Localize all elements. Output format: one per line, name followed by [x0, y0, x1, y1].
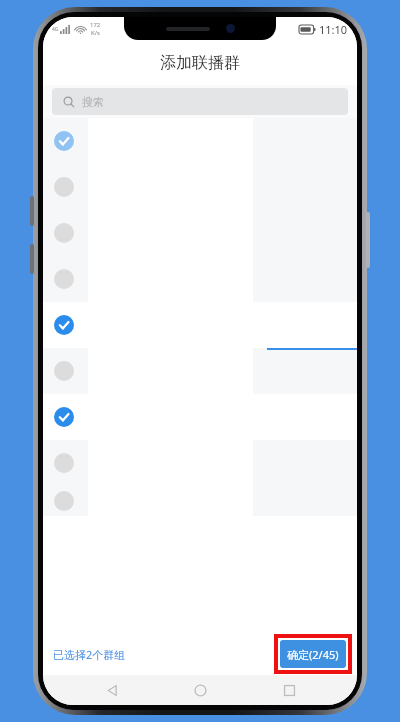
button[interactable]: Home	[180, 675, 220, 705]
other: Select group	[54, 177, 74, 197]
button[interactable]: Select group	[43, 348, 357, 394]
other: Select group	[54, 223, 74, 243]
other: Select group	[54, 407, 74, 427]
staticText: 搜索	[82, 95, 104, 109]
button[interactable]: Back	[92, 675, 132, 705]
other: Select group	[54, 361, 74, 381]
other: Select group	[54, 491, 74, 511]
button[interactable]: Select group	[43, 302, 357, 348]
button[interactable]: 搜索	[52, 88, 348, 115]
button[interactable]: Select group	[43, 164, 357, 210]
button[interactable]: Select group	[43, 394, 357, 440]
button[interactable]: Select group	[43, 256, 357, 302]
staticText: 11:10	[319, 22, 348, 37]
staticText: 确定(2/45)	[287, 647, 339, 662]
button[interactable]: Select group	[43, 118, 357, 164]
button[interactable]: Recents	[269, 675, 309, 705]
other: Select group	[54, 131, 74, 151]
staticText: 已选择2个群组	[53, 647, 126, 662]
other: Select group	[54, 269, 74, 289]
staticText: K/s	[91, 29, 100, 37]
button[interactable]: Select group	[43, 440, 357, 486]
staticText: 添加联播群	[160, 53, 240, 73]
staticText: 4G	[52, 26, 59, 33]
button[interactable]: Select group	[43, 486, 357, 516]
other: Select group	[54, 453, 74, 473]
button[interactable]: Select group	[43, 210, 357, 256]
staticText: 172	[90, 21, 101, 29]
other: Select group	[54, 315, 74, 335]
button[interactable]: 确定(2/45)	[280, 640, 346, 668]
